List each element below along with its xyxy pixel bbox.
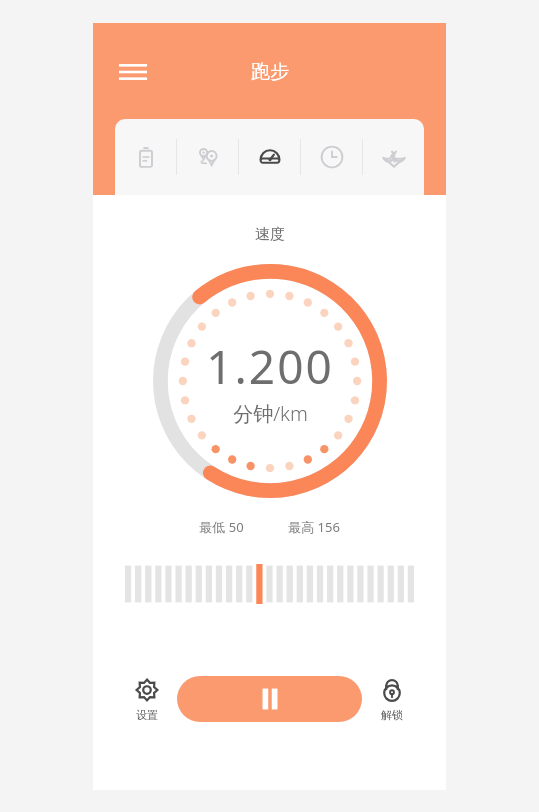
- staticText: 速度: [255, 225, 285, 244]
- button[interactable]: Speed: [239, 119, 300, 195]
- staticText: 跑步: [251, 60, 289, 84]
- staticText: 设置: [136, 708, 158, 722]
- staticText: 最高 156: [288, 518, 340, 536]
- staticText: 解锁: [381, 708, 403, 722]
- button[interactable]: Notes: [115, 119, 176, 195]
- button[interactable]: Route: [177, 119, 238, 195]
- button[interactable]: Menu: [111, 50, 155, 94]
- button[interactable]: 设置: [117, 677, 177, 722]
- button[interactable]: Pause: [177, 676, 362, 722]
- button[interactable]: Time: [301, 119, 362, 195]
- button[interactable]: Heart rate: [363, 119, 424, 195]
- staticText: 分钟/km: [233, 400, 308, 427]
- staticText: 最低 50: [199, 518, 244, 536]
- button[interactable]: 解锁: [362, 677, 422, 722]
- staticText: 1.200: [206, 335, 334, 398]
